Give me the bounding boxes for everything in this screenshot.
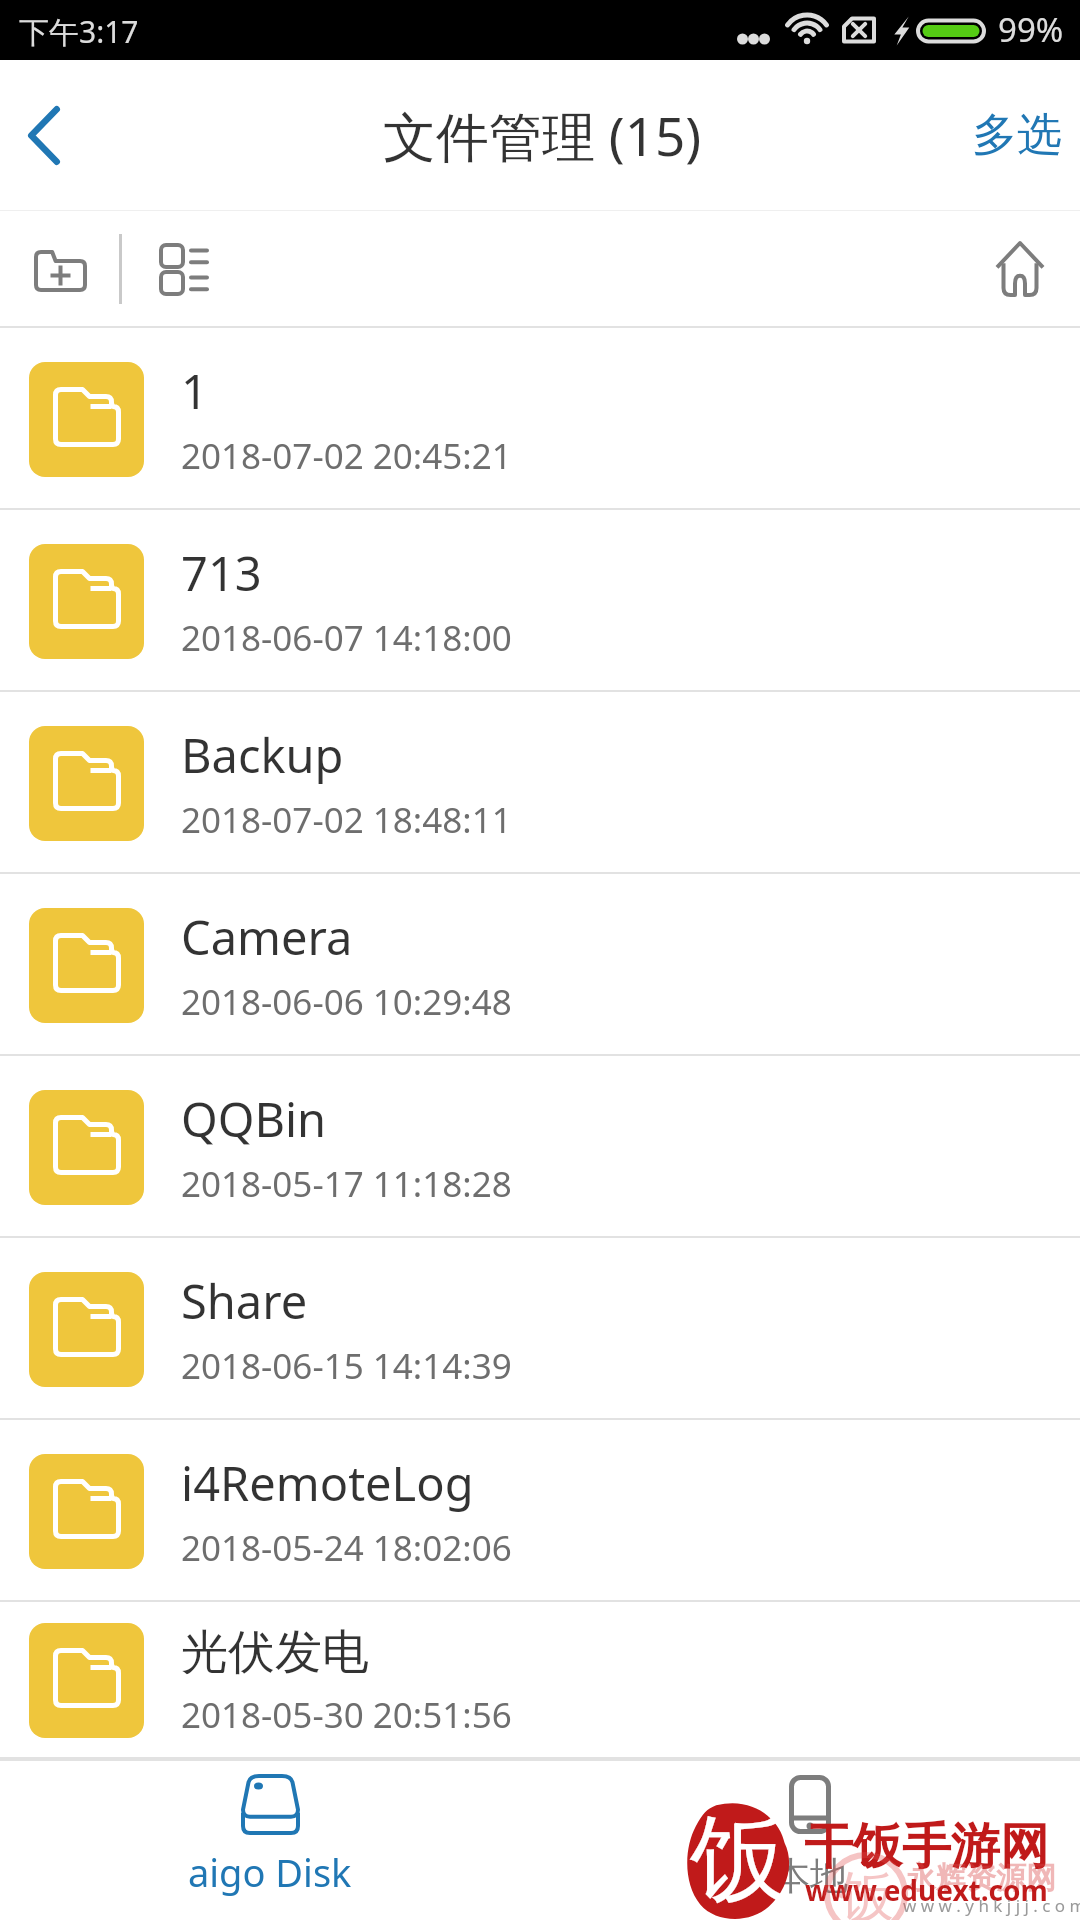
staticText: 1 — [181, 359, 208, 423]
staticText: 99% — [998, 7, 1064, 52]
button[interactable]: i4RemoteLog — [0, 1420, 1080, 1602]
button[interactable]: 多选 — [932, 60, 1080, 210]
staticText: 2018-05-30 20:51:56 — [181, 1691, 512, 1739]
staticText: 2018-06-15 14:14:39 — [181, 1342, 512, 1390]
staticText: 多选 — [972, 107, 1062, 164]
button[interactable]: 光伏发电 — [0, 1602, 1080, 1759]
button[interactable]: aigo Disk — [0, 1759, 540, 1920]
button[interactable]: Switch view — [129, 210, 239, 328]
button[interactable]: 713 — [0, 510, 1080, 692]
button[interactable]: Backup — [0, 692, 1080, 874]
staticText: aigo Disk — [188, 1846, 352, 1898]
staticText: QQBin — [181, 1087, 327, 1151]
staticText: 2018-05-24 18:02:06 — [181, 1524, 512, 1572]
staticText: Camera — [181, 905, 353, 969]
staticText: 2018-06-07 14:18:00 — [181, 614, 512, 662]
staticText: 文件管理 (15) — [383, 99, 702, 171]
staticText: 2018-07-02 20:45:21 — [181, 432, 512, 480]
staticText: 本地 — [772, 1852, 848, 1900]
button[interactable]: 本地 — [540, 1759, 1080, 1920]
button[interactable]: Camera — [0, 874, 1080, 1056]
staticText: i4RemoteLog — [181, 1451, 474, 1515]
button[interactable]: Share — [0, 1238, 1080, 1420]
button[interactable]: QQBin — [0, 1056, 1080, 1238]
button[interactable]: New folder — [4, 210, 117, 328]
staticText: 2018-05-17 11:18:28 — [181, 1160, 512, 1208]
staticText: Share — [181, 1269, 308, 1333]
button[interactable]: Back — [0, 60, 120, 210]
staticText: w w w . y h k j j j . c o m — [903, 1894, 1080, 1917]
staticText: 2018-06-06 10:29:48 — [181, 978, 512, 1026]
staticText: 干饭手游网 — [804, 1816, 1049, 1878]
staticText: 下午3:17 — [19, 11, 139, 52]
staticText: 713 — [181, 541, 262, 605]
staticText: 饭 — [838, 1862, 894, 1920]
staticText: 饭 — [690, 1800, 786, 1920]
staticText: Backup — [181, 723, 344, 787]
staticText: 光伏发电 — [181, 1623, 369, 1682]
staticText: 永辉资源网 — [906, 1859, 1056, 1897]
button[interactable]: Home — [960, 210, 1080, 328]
button[interactable]: 1 — [0, 328, 1080, 510]
staticText: www.eduext.com — [805, 1871, 1048, 1909]
staticText: 2018-07-02 18:48:11 — [181, 796, 512, 844]
